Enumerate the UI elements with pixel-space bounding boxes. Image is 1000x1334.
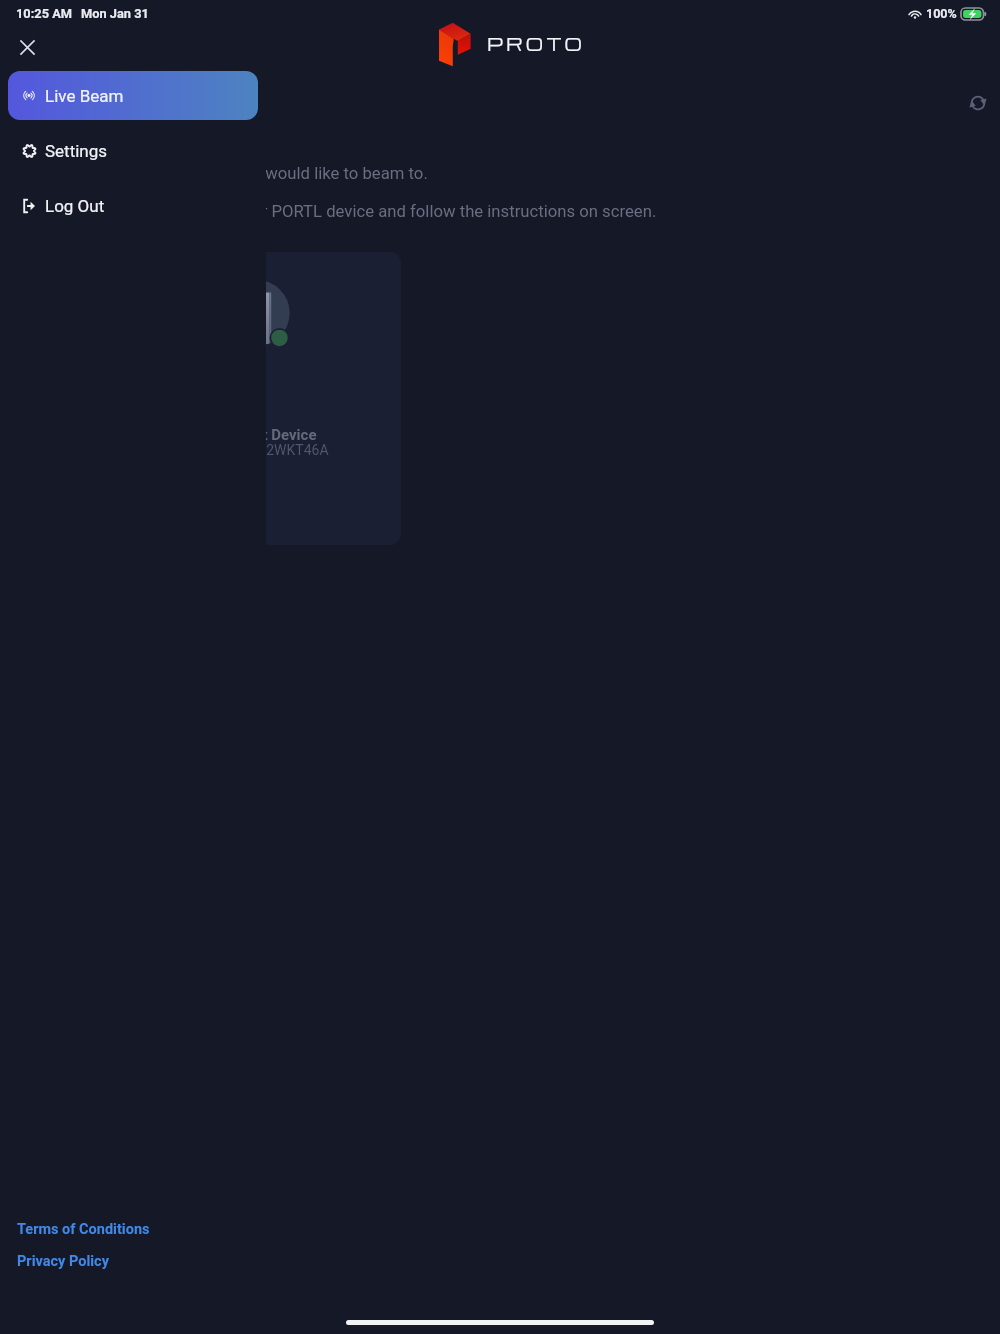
button[interactable]: Privacy Policy xyxy=(17,1253,109,1270)
staticText: M2WKT46A xyxy=(254,442,329,458)
staticText: Mon Jan 31 xyxy=(81,6,149,21)
staticText: Live Beam xyxy=(45,86,124,106)
staticText: Log Out xyxy=(45,196,105,216)
button[interactable]: Test Device xyxy=(167,252,401,545)
button[interactable]: Settings xyxy=(8,126,258,175)
button[interactable]: Close menu xyxy=(11,31,44,64)
staticText: Then, turn on your PORTL device and foll… xyxy=(134,202,657,222)
staticText: Settings xyxy=(45,141,108,161)
button[interactable]: Terms of Conditions xyxy=(17,1221,150,1238)
staticText: 10:25 AM xyxy=(16,6,72,21)
staticText: Test Device xyxy=(238,426,317,444)
staticText: PROTO xyxy=(487,32,585,55)
button[interactable]: Log Out xyxy=(8,181,258,230)
staticText: Select the device you would like to beam… xyxy=(105,164,428,184)
button[interactable]: Refresh xyxy=(959,84,996,121)
staticText: 100% xyxy=(926,6,957,21)
button[interactable]: Live Beam xyxy=(8,71,258,120)
